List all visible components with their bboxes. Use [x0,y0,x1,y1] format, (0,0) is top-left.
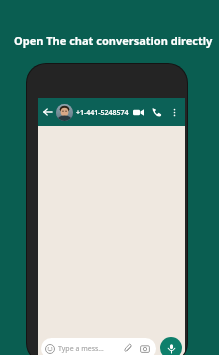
button[interactable]: Attach [122,342,135,355]
button[interactable]: Camera [138,342,151,355]
button[interactable]: Type a mess… [41,338,156,355]
staticText: Open The chat conversation directly [14,33,213,48]
staticText: +1-441-52485745 [76,108,130,118]
button[interactable]: Record voice message [160,337,182,355]
button[interactable]: Video call [130,104,146,120]
button[interactable]: +1-441-52485745 [56,104,130,121]
button[interactable]: Call [149,104,165,120]
button[interactable]: More options [167,105,181,119]
staticText: Type a mess… [58,344,122,354]
button[interactable]: Back [41,105,55,119]
